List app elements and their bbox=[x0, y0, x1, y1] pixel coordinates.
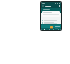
button[interactable] bbox=[42, 19, 60, 21]
button[interactable]: Tab 2 bbox=[48, 28, 50, 30]
button[interactable] bbox=[42, 23, 60, 24]
button[interactable] bbox=[42, 21, 60, 23]
button[interactable]: Tab 3 bbox=[52, 28, 54, 30]
button[interactable]: Tab 4 bbox=[57, 28, 59, 30]
button[interactable]: Featured item bbox=[50, 26, 53, 29]
button[interactable]: Tab 1 bbox=[43, 28, 45, 30]
button[interactable] bbox=[42, 11, 60, 17]
button[interactable]: More options bbox=[58, 5, 60, 7]
